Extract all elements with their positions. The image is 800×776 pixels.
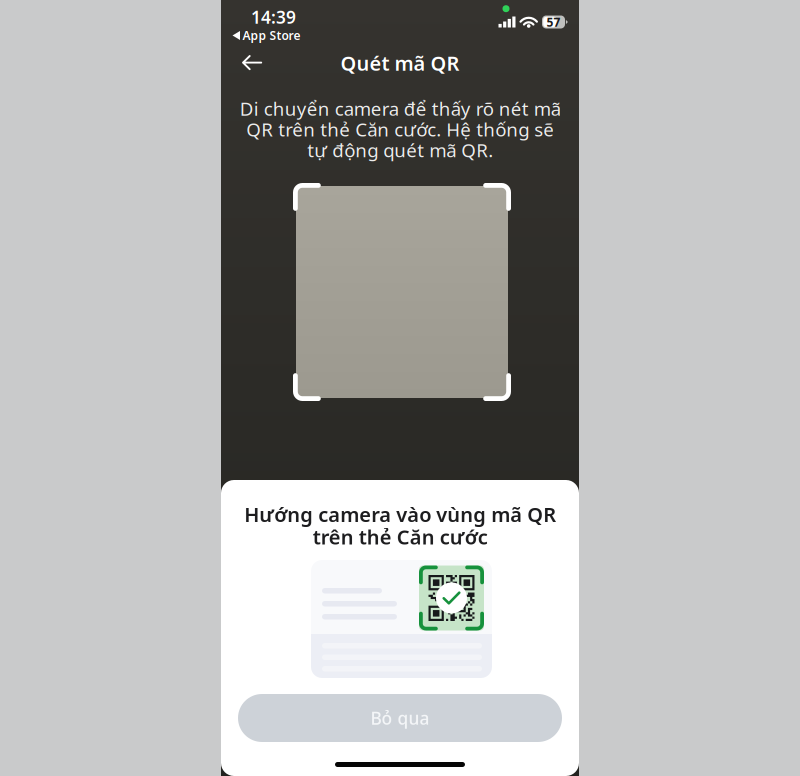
staticText: Bỏ qua	[370, 706, 429, 729]
staticText: 14:39	[251, 5, 296, 28]
button[interactable]: Bỏ qua	[238, 694, 562, 742]
staticText: 57	[546, 14, 560, 30]
staticText: Quét mã QR	[340, 50, 459, 76]
staticText: App Store	[242, 27, 300, 43]
staticText: Hướng camera vào vùng mã QR trên thẻ Căn…	[244, 501, 556, 550]
staticText: Di chuyển camera để thấy rõ nét mã QR tr…	[239, 96, 560, 162]
button[interactable]: Back	[221, 43, 276, 82]
